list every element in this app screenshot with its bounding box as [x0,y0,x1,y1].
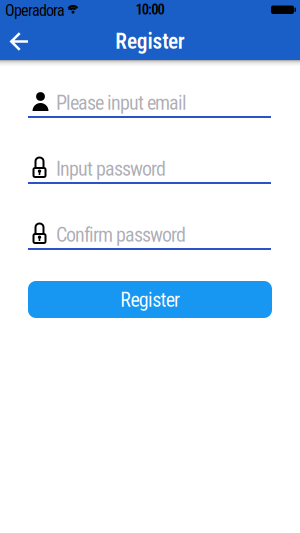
staticText: Confirm password [56,223,186,247]
staticText: Register [120,288,180,312]
button[interactable]: Confirm password [0,198,300,264]
staticText: Please input email [56,91,187,115]
button[interactable]: Back [0,26,37,53]
staticText: Input password [56,157,166,181]
button[interactable]: Input password [0,132,300,198]
button[interactable]: Please input email [0,66,300,132]
button[interactable]: Register [28,281,272,318]
staticText: Operadora [5,1,65,20]
staticText: Register [115,29,185,54]
staticText: 10:00 [136,1,164,18]
